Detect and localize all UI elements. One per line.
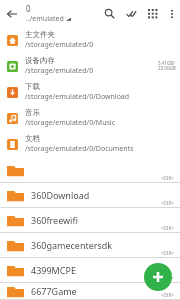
staticText: 6677Game bbox=[31, 285, 77, 297]
button[interactable]: More options bbox=[164, 0, 180, 27]
button[interactable]: Back bbox=[0, 0, 24, 27]
staticText: <DIR> bbox=[161, 200, 174, 206]
staticText: 主文件夹 bbox=[25, 30, 55, 39]
button[interactable]: 6677Game bbox=[0, 283, 180, 300]
staticText: /storage/emulated/0/Download bbox=[25, 92, 130, 102]
staticText: 360Download bbox=[31, 189, 90, 201]
button[interactable]: 360freewifi bbox=[0, 208, 180, 233]
staticText: 360freewifi bbox=[31, 214, 78, 226]
staticText: ../emulated bbox=[26, 14, 64, 24]
staticText: 下载 bbox=[25, 82, 40, 91]
staticText: <DIR> bbox=[161, 175, 174, 181]
staticText: /storage/emulated/0/Documents bbox=[25, 144, 134, 154]
staticText: 设备内存 bbox=[25, 56, 55, 65]
button[interactable]: 4399MCPE bbox=[0, 258, 180, 283]
button[interactable]: Select all bbox=[120, 0, 142, 27]
staticText: <DIR> bbox=[161, 292, 174, 298]
button[interactable]: 360Download bbox=[0, 183, 180, 208]
staticText: 4399MCPE bbox=[31, 264, 76, 276]
button[interactable]: Search bbox=[98, 0, 120, 27]
staticText: 5.41GB/ 23.50GB bbox=[158, 60, 176, 72]
staticText: 文档 bbox=[25, 134, 40, 143]
button[interactable]: 下载 bbox=[0, 79, 180, 105]
button[interactable]: 文档 bbox=[0, 131, 180, 157]
staticText: 0 bbox=[26, 3, 31, 14]
button[interactable]: 设备内存 bbox=[0, 53, 180, 79]
staticText: <DIR> bbox=[161, 225, 174, 231]
staticText: /storage/emulated/0/Music bbox=[25, 118, 115, 128]
button[interactable]: 主文件夹 bbox=[0, 27, 180, 53]
staticText: 360gamecentersdk bbox=[31, 239, 113, 251]
button[interactable]: 0 bbox=[26, 3, 98, 24]
button[interactable]: Grid view bbox=[142, 0, 164, 27]
button[interactable]: 360gamecentersdk bbox=[0, 233, 180, 258]
staticText: <DIR> bbox=[161, 275, 174, 281]
button[interactable]: Add bbox=[144, 263, 172, 291]
button[interactable]: 音乐 bbox=[0, 105, 180, 131]
staticText: 音乐 bbox=[25, 108, 40, 117]
staticText: <DIR> bbox=[161, 250, 174, 256]
staticText: /storage/emulated/0 bbox=[25, 40, 94, 50]
staticText: /storage/emulated/0 bbox=[25, 66, 94, 76]
button[interactable]: <DIR> bbox=[0, 158, 180, 183]
